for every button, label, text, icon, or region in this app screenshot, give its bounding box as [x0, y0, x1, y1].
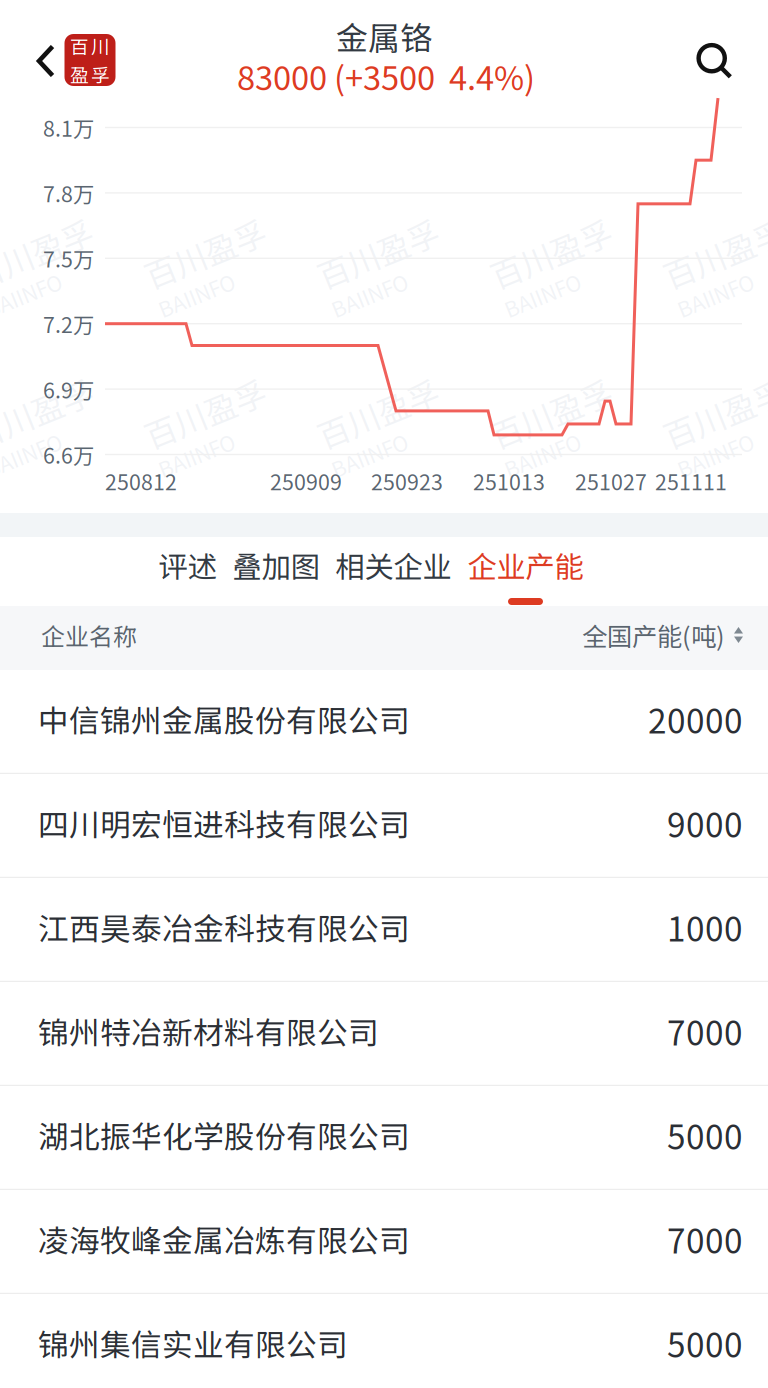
staticText: 百	[70, 32, 89, 59]
staticText: 百川盈孚	[147, 393, 275, 439]
button[interactable]: 锦州集信实业有限公司	[0, 1294, 768, 1388]
staticText: 百川盈孚	[0, 233, 102, 279]
staticText: 金属铬	[336, 13, 432, 59]
staticText: 相关企业	[335, 544, 451, 586]
staticText: BAIINFO	[0, 276, 55, 307]
staticText: 250812	[105, 466, 177, 496]
staticText: 川	[91, 32, 110, 59]
staticText: 9000	[667, 799, 743, 847]
staticText: BAIINFO	[320, 436, 401, 467]
button[interactable]: 中信锦州金属股份有限公司	[0, 670, 768, 774]
staticText: 江西昊泰冶金科技有限公司	[38, 905, 410, 949]
staticText: 5000	[667, 1319, 743, 1367]
staticText: 四川明宏恒进科技有限公司	[38, 801, 410, 845]
staticText: 251027	[575, 466, 647, 496]
staticText: 1000	[667, 903, 743, 951]
staticText: 251111	[655, 466, 727, 496]
button[interactable]: 全国产能(吨)	[582, 612, 743, 664]
staticText: 锦州集信实业有限公司	[38, 1321, 348, 1365]
button[interactable]: 搜索	[683, 30, 745, 92]
button[interactable]: 返回	[18, 33, 74, 89]
staticText: 6.9万	[43, 374, 94, 405]
staticText: BAIINFO	[493, 276, 574, 307]
staticText: 百川盈孚	[493, 393, 621, 439]
button[interactable]: 四川明宏恒进科技有限公司	[0, 774, 768, 878]
staticText: 百川盈孚	[493, 233, 621, 279]
staticText: 7.8万	[43, 177, 94, 208]
staticText: 20000	[648, 695, 743, 743]
staticText: 6.6万	[43, 439, 94, 470]
staticText: BAIINFO	[147, 276, 228, 307]
button[interactable]: 相关企业	[327, 537, 459, 606]
staticText: 8.1万	[43, 112, 94, 143]
staticText: 7.2万	[43, 308, 94, 339]
button[interactable]: 企业产能	[459, 537, 591, 606]
staticText: 企业产能	[467, 544, 583, 586]
staticText: 5000	[667, 1111, 743, 1159]
staticText: 评述	[158, 544, 216, 586]
button[interactable]: 锦州特冶新材料有限公司	[0, 982, 768, 1086]
staticText: 83000 (+3500 4.4%)	[237, 52, 535, 100]
staticText: 百川盈孚	[666, 393, 768, 439]
button[interactable]: 百川盈孚	[64, 34, 115, 86]
staticText: 叠加图	[232, 544, 319, 586]
staticText: BAIINFO	[147, 436, 228, 467]
staticText: 盈	[70, 60, 89, 87]
staticText: 251013	[473, 466, 545, 496]
staticText: 百川盈孚	[320, 233, 448, 279]
staticText: BAIINFO	[666, 436, 747, 467]
staticText: 凌海牧峰金属冶炼有限公司	[38, 1217, 410, 1261]
staticText: 湖北振华化学股份有限公司	[38, 1113, 410, 1157]
staticText: 250909	[270, 466, 342, 496]
button[interactable]: 湖北振华化学股份有限公司	[0, 1086, 768, 1190]
staticText: 百川盈孚	[320, 393, 448, 439]
staticText: BAIINFO	[666, 276, 747, 307]
staticText: 锦州特冶新材料有限公司	[38, 1009, 379, 1053]
staticText: 孚	[91, 60, 110, 87]
staticText: 全国产能(吨)	[582, 617, 725, 653]
staticText: 百川盈孚	[147, 233, 275, 279]
button[interactable]: 江西昊泰冶金科技有限公司	[0, 878, 768, 982]
staticText: 7.5万	[43, 243, 94, 274]
staticText: 百川盈孚	[0, 393, 102, 439]
staticText: BAIINFO	[493, 436, 574, 467]
button[interactable]: 凌海牧峰金属冶炼有限公司	[0, 1190, 768, 1294]
staticText: 中信锦州金属股份有限公司	[38, 697, 410, 741]
staticText: 7000	[667, 1007, 743, 1055]
staticText: BAIINFO	[320, 276, 401, 307]
button[interactable]: 评述	[150, 537, 224, 606]
staticText: 企业名称	[41, 618, 137, 652]
staticText: BAIINFO	[0, 436, 55, 467]
staticText: 百川盈孚	[666, 233, 768, 279]
button[interactable]: 叠加图	[224, 537, 327, 606]
staticText: 250923	[371, 466, 443, 496]
staticText: 7000	[667, 1215, 743, 1263]
